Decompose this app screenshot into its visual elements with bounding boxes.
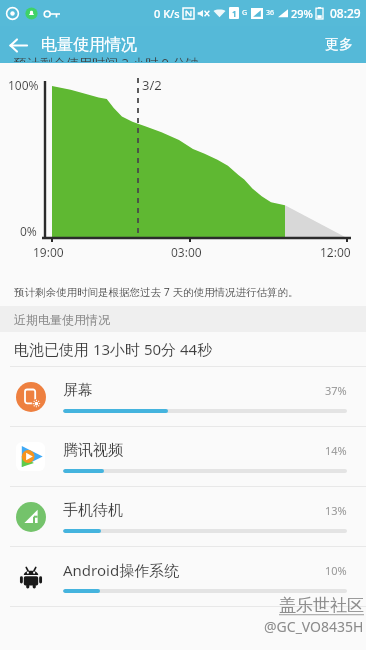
staticText: 腾讯视频 [63, 441, 325, 460]
button[interactable]: 更多 [312, 26, 366, 63]
staticText: G [242, 8, 248, 18]
staticText: 1 [232, 8, 237, 19]
staticText: Android操作系统 [63, 560, 325, 580]
staticText: 19:00 [33, 244, 64, 260]
button[interactable]: 腾讯视频 [0, 427, 366, 486]
staticText: 13% [325, 503, 347, 518]
staticText: 10% [325, 563, 347, 578]
staticText: 预计剩余使用时间 3 小时 9 分钟 [14, 54, 199, 62]
staticText: 电量使用情况 [41, 35, 137, 55]
staticText: 36 [266, 8, 275, 18]
staticText: 0 K/s [154, 6, 180, 21]
staticText: 预计剩余使用时间是根据您过去 7 天的使用情况进行估算的。 [14, 285, 299, 299]
staticText: 屏幕 [63, 381, 325, 400]
button[interactable]: 屏幕 [0, 367, 366, 426]
staticText: 29% [291, 6, 313, 21]
staticText: 3/2 [142, 76, 162, 94]
staticText: 14% [325, 443, 347, 458]
staticText: 近期电量使用情况 [14, 312, 110, 327]
staticText: 电池已使用 13小时 50分 44秒 [14, 339, 213, 359]
staticText: 盖乐世社区 [279, 595, 364, 616]
staticText: 0% [20, 223, 37, 239]
button[interactable]: Android操作系统 [0, 547, 366, 606]
staticText: 08:29 [330, 5, 361, 21]
staticText: 12:00 [320, 244, 351, 260]
button[interactable]: Back [0, 27, 36, 63]
staticText: 手机待机 [63, 501, 325, 520]
button[interactable]: 手机待机 [0, 487, 366, 546]
staticText: 03:00 [171, 244, 202, 260]
staticText: 更多 [325, 36, 353, 54]
staticText: 37% [325, 383, 347, 398]
staticText: 100% [8, 77, 39, 93]
staticText: @GC_VO8435H [264, 617, 364, 636]
